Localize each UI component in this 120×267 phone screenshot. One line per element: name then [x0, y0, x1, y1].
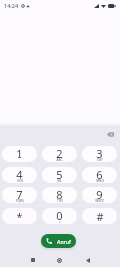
staticText: WXYZ [95, 199, 104, 203]
button[interactable]: # [82, 208, 117, 224]
button[interactable]: 2 [42, 146, 77, 162]
button[interactable]: 0 [42, 208, 77, 224]
button[interactable]: 1 [2, 146, 37, 162]
staticText: 4 [16, 167, 23, 182]
button[interactable]: 6 [82, 167, 117, 183]
button[interactable]: Back [82, 254, 94, 266]
staticText: 6 [96, 167, 103, 182]
staticText: MNO [96, 179, 104, 183]
button[interactable]: Home [53, 254, 65, 266]
staticText: # [96, 209, 104, 224]
staticText: DEF [97, 158, 103, 162]
staticText: 9 [96, 187, 103, 202]
staticText: 3 [96, 146, 103, 161]
staticText: 8 [56, 187, 63, 202]
staticText: 14:24 [4, 2, 19, 9]
button[interactable]: Anruf [41, 234, 76, 248]
staticText: 7 [16, 187, 23, 202]
button[interactable]: 7 [2, 187, 37, 203]
staticText: + [59, 220, 61, 224]
staticText: 2 [56, 146, 63, 161]
staticText: JKL [57, 179, 62, 183]
button[interactable]: Backspace [102, 126, 116, 140]
staticText: GHI [17, 179, 23, 183]
staticText: 0 [56, 208, 63, 223]
staticText: ABC [56, 158, 63, 162]
button[interactable]: 4 [2, 167, 37, 183]
button[interactable]: 5 [42, 167, 77, 183]
button[interactable]: 8 [42, 187, 77, 203]
staticText: PQRS [16, 199, 24, 203]
staticText: * [16, 209, 23, 224]
staticText: Anruf [57, 238, 71, 245]
button[interactable]: * [2, 208, 37, 224]
staticText: 1 [16, 146, 23, 161]
button[interactable]: 3 [82, 146, 117, 162]
button[interactable]: 9 [82, 187, 117, 203]
staticText: 5 [56, 167, 63, 182]
staticText: TUV [57, 199, 63, 203]
button[interactable]: Recent apps [27, 254, 39, 266]
